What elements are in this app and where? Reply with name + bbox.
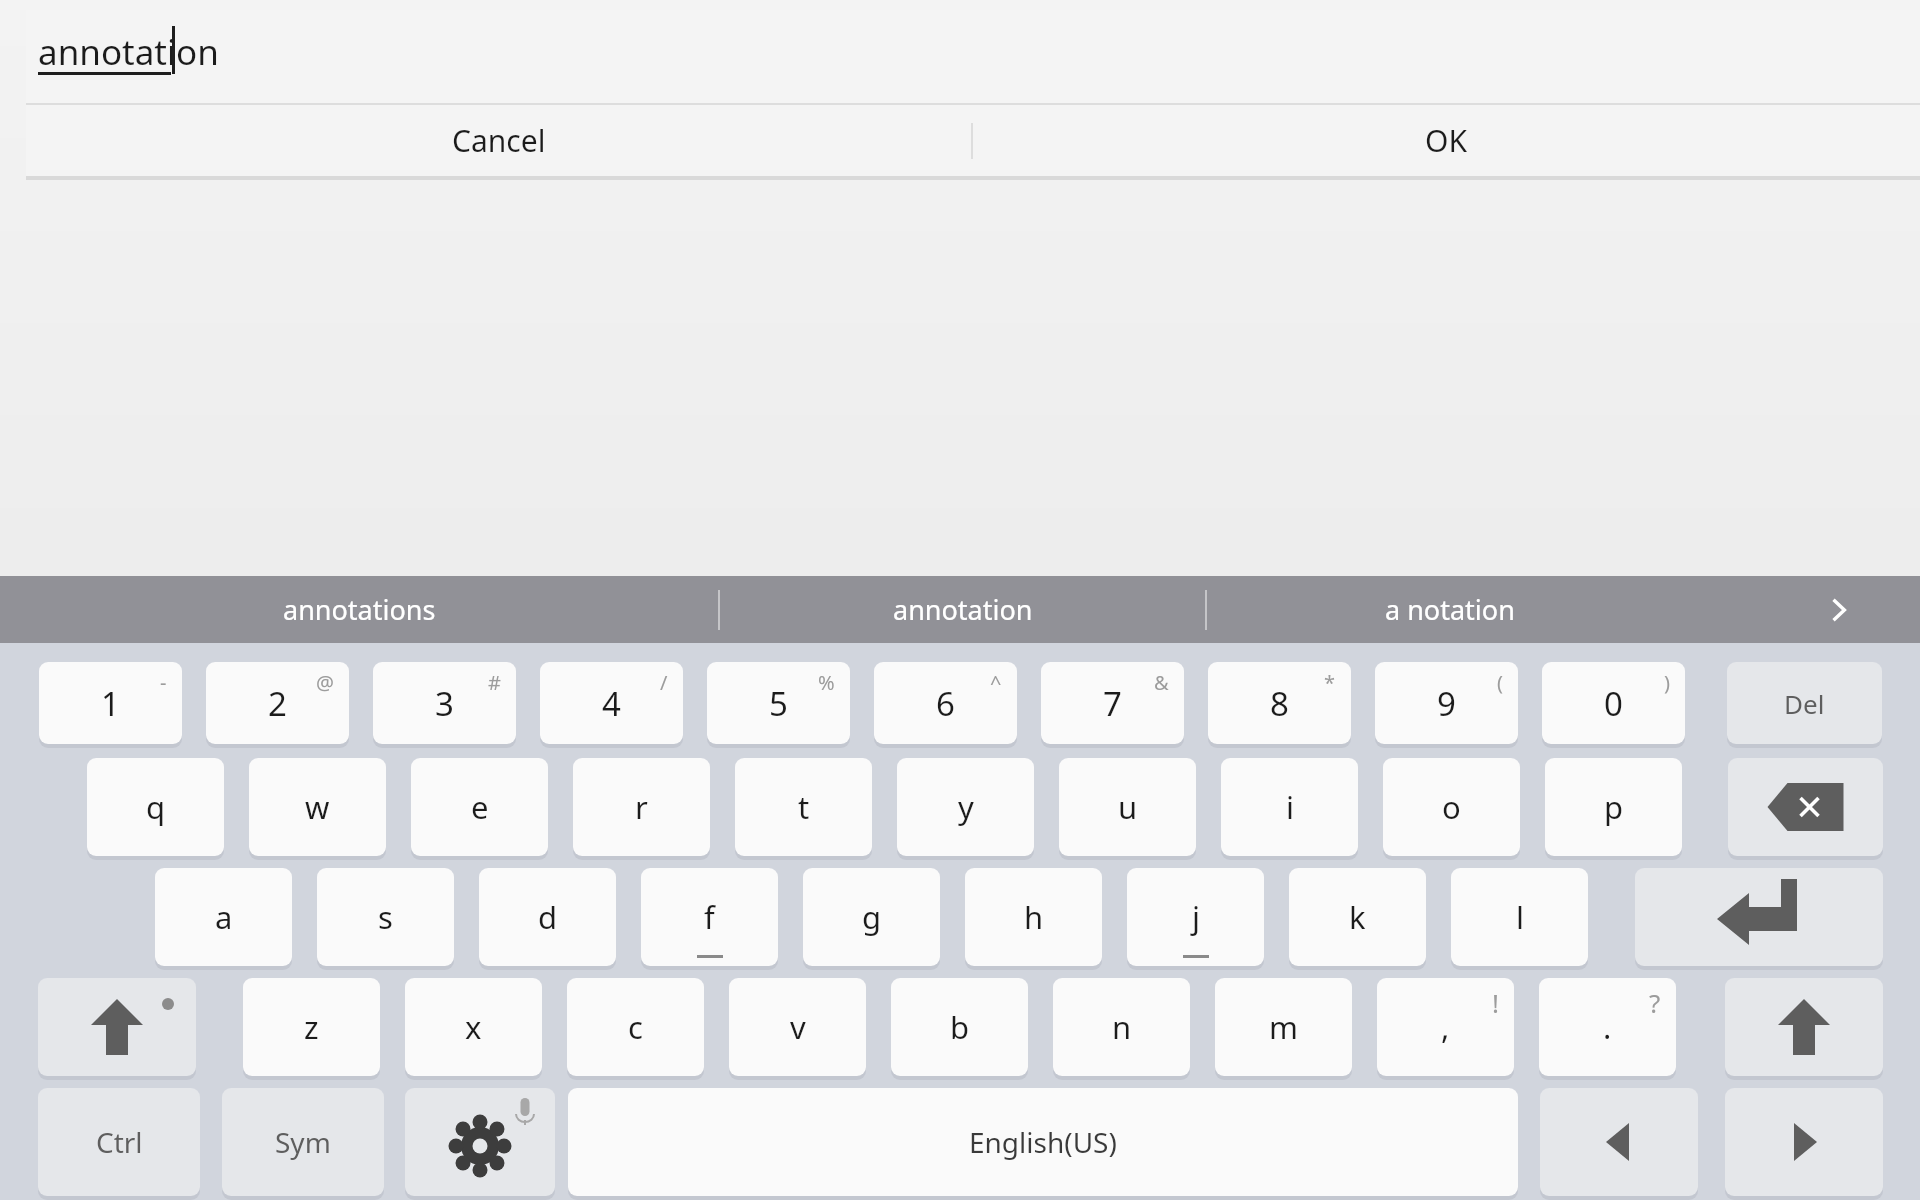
staticText: ^ [990,669,1002,696]
staticText: k [1349,896,1366,938]
staticText: English(US) [969,1123,1117,1161]
staticText: h [1024,896,1044,938]
staticText: ? [1649,985,1661,1020]
staticText: ! [1492,985,1499,1020]
staticText: a notation [1385,591,1515,628]
button[interactable]: Shift [38,978,196,1076]
staticText: 1 [101,681,120,726]
button[interactable]: w [249,758,386,856]
staticText: a [215,896,233,938]
button[interactable]: 2 [206,662,349,744]
staticText: 9 [1437,681,1456,726]
button[interactable]: y [897,758,1034,856]
staticText: ( [1497,669,1503,696]
staticText: r [635,786,648,828]
button[interactable]: English(US) [568,1088,1518,1196]
staticText: annotation [38,28,219,76]
button[interactable]: , [1377,978,1514,1076]
button[interactable]: b [891,978,1028,1076]
button[interactable]: i [1221,758,1358,856]
button[interactable]: 4 [540,662,683,744]
button[interactable]: annotations [0,576,718,643]
button[interactable]: f [641,868,778,966]
staticText: Del [1784,686,1825,721]
button[interactable]: 5 [707,662,850,744]
staticText: OK [1425,120,1467,161]
button[interactable]: 8 [1208,662,1351,744]
button[interactable]: Del [1727,662,1882,744]
button[interactable]: h [965,868,1102,966]
button[interactable]: q [87,758,224,856]
button[interactable]: Shift [1725,978,1883,1076]
button[interactable]: Backspace [1728,758,1883,856]
button[interactable]: o [1383,758,1520,856]
button[interactable]: r [573,758,710,856]
button[interactable]: l [1451,868,1588,966]
staticText: d [538,896,558,938]
staticText: , [1441,1006,1450,1048]
button[interactable]: p [1545,758,1682,856]
button[interactable]: c [567,978,704,1076]
button[interactable]: Ctrl [38,1088,200,1196]
button[interactable]: Move cursor right [1725,1088,1883,1196]
staticText: * [1324,669,1336,696]
button[interactable]: v [729,978,866,1076]
staticText: @ [316,669,334,696]
staticText: Sym [275,1123,331,1161]
staticText: / [660,669,668,696]
staticText: 7 [1103,681,1122,726]
staticText: p [1604,786,1624,828]
staticText: . [1603,1006,1612,1048]
button[interactable]: More suggestions [1755,576,1920,643]
staticText: 0 [1604,681,1623,726]
button[interactable]: u [1059,758,1196,856]
button[interactable]: annotation [720,576,1205,643]
button[interactable]: 7 [1041,662,1184,744]
button[interactable]: m [1215,978,1352,1076]
button[interactable]: t [735,758,872,856]
staticText: # [488,669,501,696]
staticText: o [1442,786,1461,828]
staticText: g [862,896,882,938]
staticText: l [1516,896,1524,938]
button[interactable]: k [1289,868,1426,966]
button[interactable]: 1 [39,662,182,744]
staticText: - [160,669,167,696]
button[interactable]: 3 [373,662,516,744]
button[interactable]: n [1053,978,1190,1076]
staticText: n [1112,1006,1132,1048]
button[interactable]: Keyboard settings [405,1088,555,1196]
staticText: q [146,786,166,828]
staticText: s [378,896,393,938]
button[interactable]: s [317,868,454,966]
button[interactable]: . [1539,978,1676,1076]
button[interactable]: Sym [222,1088,384,1196]
button[interactable]: 6 [874,662,1017,744]
staticText: b [950,1006,970,1048]
button[interactable]: Move cursor left [1540,1088,1698,1196]
button[interactable]: e [411,758,548,856]
button[interactable]: d [479,868,616,966]
staticText: v [790,1006,806,1048]
button[interactable]: 9 [1375,662,1518,744]
button[interactable]: x [405,978,542,1076]
button[interactable]: g [803,868,940,966]
button[interactable]: Enter [1635,868,1883,966]
staticText: Ctrl [96,1123,143,1161]
button[interactable]: OK [973,105,1918,176]
staticText: u [1118,786,1138,828]
staticText: w [305,786,330,828]
staticText: % [818,669,835,696]
button[interactable]: a notation [1207,576,1692,643]
staticText: e [471,786,489,828]
staticText: m [1269,1006,1298,1048]
button[interactable]: Cancel [26,105,971,176]
button[interactable]: z [243,978,380,1076]
staticText: 5 [769,681,788,726]
staticText: j [1192,896,1200,938]
staticText: c [628,1006,643,1048]
button[interactable]: a [155,868,292,966]
button[interactable]: j [1127,868,1264,966]
button[interactable]: 0 [1542,662,1685,744]
staticText: annotations [283,591,436,628]
